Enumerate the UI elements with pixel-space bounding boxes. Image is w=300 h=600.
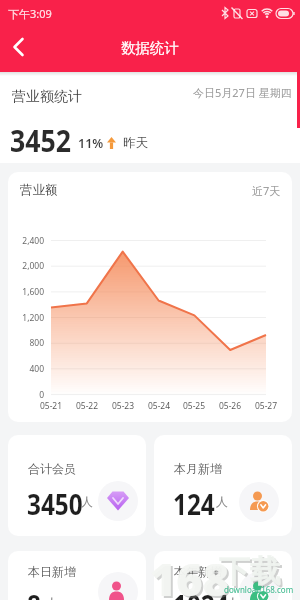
staticText: 8 bbox=[27, 585, 41, 600]
staticText: 近7天 bbox=[252, 183, 281, 198]
staticText: 3452 bbox=[10, 120, 71, 161]
staticText: 05-23 bbox=[106, 400, 140, 412]
staticText: 营业额 bbox=[20, 182, 58, 198]
staticText: 1,600 bbox=[8, 286, 44, 298]
staticText: 数据统计 bbox=[121, 39, 179, 57]
staticText: 168 bbox=[150, 548, 230, 600]
button[interactable] bbox=[13, 38, 24, 56]
staticText: 05-21 bbox=[34, 400, 68, 412]
staticText: 下午3:09 bbox=[8, 6, 52, 21]
staticText: 本月新增 bbox=[174, 461, 222, 476]
staticText: 2,400 bbox=[8, 235, 44, 247]
staticText: 2,000 bbox=[8, 260, 44, 272]
staticText: 今日5月27日 星期四 bbox=[193, 85, 292, 100]
staticText: 人 bbox=[81, 494, 93, 509]
staticText: 3450 bbox=[27, 484, 83, 523]
staticText: 昨天 bbox=[123, 135, 148, 151]
staticText: 800 bbox=[8, 337, 44, 349]
button[interactable]: 本月新增 bbox=[154, 435, 292, 536]
button[interactable]: 本年新增 bbox=[154, 551, 292, 600]
button[interactable]: 合计会员 bbox=[8, 435, 146, 536]
staticText: 人 bbox=[46, 595, 58, 600]
staticText: 05-27 bbox=[249, 400, 283, 412]
staticText: 05-24 bbox=[142, 400, 176, 412]
staticText: 05-22 bbox=[70, 400, 104, 412]
staticText: 05-25 bbox=[177, 400, 211, 412]
staticText: 168 bbox=[152, 550, 232, 600]
staticText: 1024 bbox=[173, 585, 229, 600]
button[interactable]: 本日新增 bbox=[8, 551, 146, 600]
staticText: 人 bbox=[216, 494, 228, 509]
button[interactable] bbox=[8, 172, 292, 422]
staticText: 400 bbox=[8, 363, 44, 375]
staticText: 0 bbox=[8, 389, 44, 401]
staticText: 合计会员 bbox=[28, 461, 76, 476]
staticText: 人 bbox=[227, 595, 239, 600]
staticText: 下载 bbox=[221, 554, 283, 593]
staticText: 1,200 bbox=[8, 312, 44, 324]
staticText: download168.com bbox=[224, 584, 294, 595]
staticText: 营业额统计 bbox=[12, 88, 82, 106]
staticText: 11% bbox=[78, 135, 104, 152]
staticText: 05-26 bbox=[213, 400, 247, 412]
staticText: 下载 bbox=[219, 552, 281, 591]
staticText: 本年新增 bbox=[174, 564, 222, 579]
staticText: 124 bbox=[173, 484, 215, 523]
button[interactable]: 近7天 bbox=[252, 183, 281, 198]
staticText: 本日新增 bbox=[28, 564, 76, 579]
